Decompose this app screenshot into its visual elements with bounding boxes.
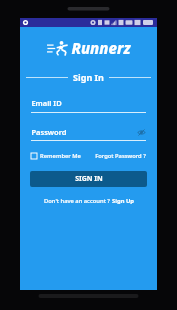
staticText: Forgot Password ? <box>95 152 146 160</box>
button[interactable]: Show password <box>137 128 146 137</box>
staticText: SIGN IN <box>75 174 103 184</box>
staticText: Email ID <box>31 98 62 108</box>
button[interactable]: Forgot Password ? <box>95 150 146 162</box>
button[interactable]: Sign Up <box>112 197 134 205</box>
staticText: Password <box>31 127 67 137</box>
button[interactable]: SIGN IN <box>30 171 147 187</box>
button[interactable]: Remember Me <box>31 150 81 162</box>
button[interactable]: Password <box>31 127 146 141</box>
staticText: Sign Up <box>112 197 134 205</box>
staticText: Runnerz <box>71 38 131 58</box>
staticText: Sign In <box>73 71 104 83</box>
button[interactable]: Email ID <box>31 98 146 113</box>
staticText: Don't have an account ? <box>44 197 110 205</box>
staticText: Remember Me <box>40 152 81 160</box>
